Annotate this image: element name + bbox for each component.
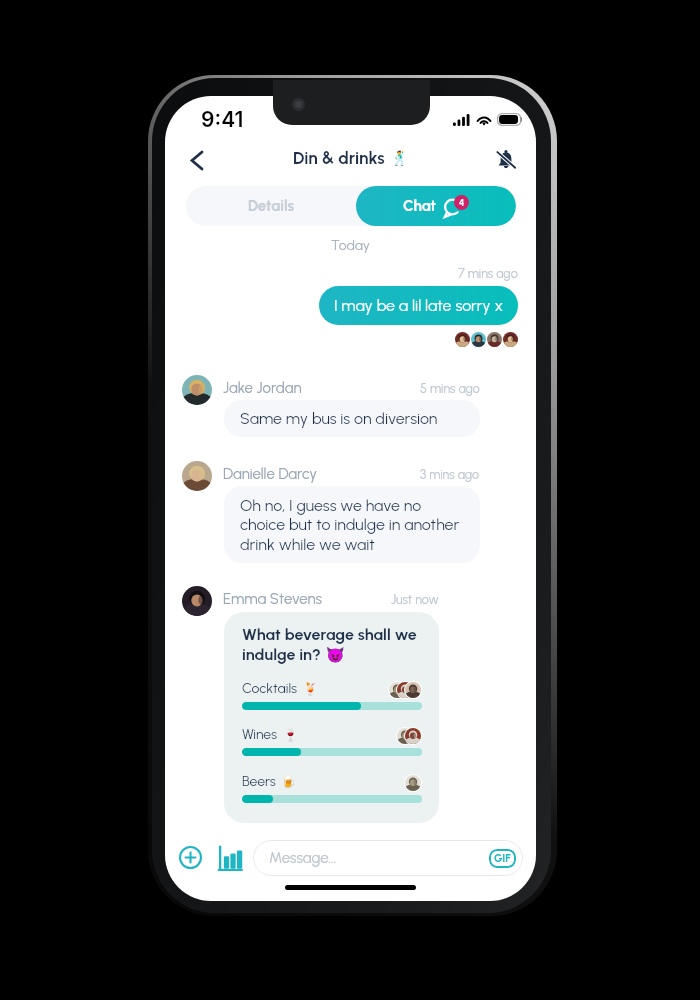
button[interactable]: Mute notifications xyxy=(486,140,526,180)
staticText: 4 xyxy=(459,197,465,208)
button[interactable]: Chat xyxy=(356,186,516,226)
staticText: 🍷 xyxy=(283,728,298,742)
staticText: Same my bus is on diversion xyxy=(240,409,438,428)
staticText: Jake Jordan xyxy=(223,379,302,397)
staticText: Just now xyxy=(391,592,439,607)
button[interactable]: I may be a lil late sorry x xyxy=(319,286,518,325)
staticText: 7 mins ago xyxy=(458,266,518,281)
staticText: Din & drinks xyxy=(293,148,385,168)
staticText: Oh no, I guess we have no choice but to … xyxy=(240,496,460,554)
staticText: Wines xyxy=(242,726,278,743)
staticText: Cocktails xyxy=(242,680,298,697)
staticText: Chat xyxy=(403,197,436,215)
button[interactable]: GIF xyxy=(489,849,516,868)
button[interactable]: Create poll xyxy=(213,840,247,874)
staticText: What beverage shall we xyxy=(242,625,417,644)
button[interactable]: Oh no, I guess we have no choice but to … xyxy=(224,486,480,563)
staticText: 🍺 xyxy=(281,775,296,789)
button[interactable]: Same my bus is on diversion xyxy=(224,400,480,437)
button[interactable]: What beverage shall we xyxy=(224,612,439,823)
staticText: I may be a lil late sorry x xyxy=(334,296,503,315)
button[interactable]: Add attachment xyxy=(173,840,207,874)
staticText: 😈 xyxy=(326,646,345,664)
staticText: Details xyxy=(248,197,295,215)
staticText: 🍹 xyxy=(303,682,318,696)
staticText: GIF xyxy=(494,852,511,865)
staticText: 9:41 xyxy=(201,107,244,132)
button[interactable]: Details xyxy=(186,186,356,226)
button[interactable]: Message... xyxy=(253,840,523,876)
staticText: Beers xyxy=(242,773,276,790)
staticText: indulge in? xyxy=(242,645,321,664)
staticText: Today xyxy=(331,237,370,254)
staticText: Emma Stevens xyxy=(223,590,322,608)
staticText: Danielle Darcy xyxy=(223,465,318,483)
staticText: 3 mins ago xyxy=(420,467,480,482)
staticText: 🕺 xyxy=(391,150,409,166)
button[interactable]: Back xyxy=(177,140,217,180)
staticText: 5 mins ago xyxy=(420,381,480,396)
staticText: Message... xyxy=(269,849,337,867)
